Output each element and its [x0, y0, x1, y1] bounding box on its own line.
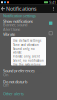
- staticText: Use default settings: [13, 39, 41, 42]
- button[interactable]: More options: [51, 5, 56, 13]
- staticText: Off: [3, 82, 9, 88]
- staticText: Sound only, no vibrate: [13, 47, 35, 54]
- staticText: Notifications: [6, 5, 37, 12]
- staticText: Vibrate: [3, 31, 15, 37]
- staticText: Show notifications: [3, 18, 33, 24]
- staticText: Tone and vibration: [13, 43, 39, 47]
- staticText: Vibrate only, silent: [13, 55, 40, 58]
- staticText: Repeat alert每 5 min: [13, 71, 42, 75]
- staticText: 9:41: [49, 0, 56, 5]
- staticText: Do not disturb: [3, 79, 27, 84]
- staticText: Custom tone selected: [13, 67, 44, 71]
- staticText: Banner, sound: [3, 22, 27, 27]
- staticText: On: [3, 72, 8, 77]
- staticText: Other alerts: [3, 91, 24, 96]
- staticText: Use the system tone: [13, 63, 41, 66]
- button[interactable]: Back: [1, 5, 6, 13]
- staticText: Notification settings: [3, 13, 36, 18]
- staticText: Alert tone: [3, 26, 20, 32]
- staticText: Silent, no notification: [13, 59, 44, 62]
- staticText: Sound preferences: [3, 68, 35, 73]
